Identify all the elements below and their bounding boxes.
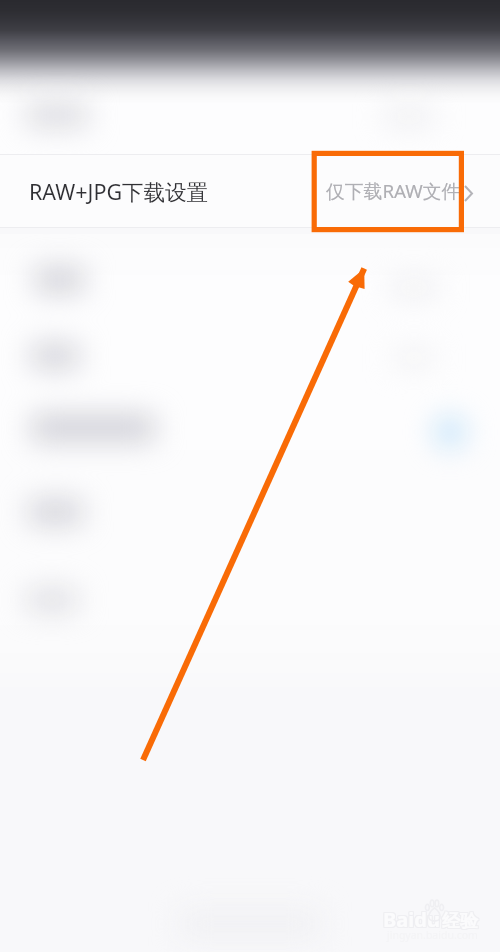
staticText: Baidu <box>383 906 440 933</box>
staticText: Baidu <box>382 906 439 933</box>
staticText: Baidu <box>383 905 440 932</box>
staticText: RAW+JPG下载设置 <box>29 177 209 206</box>
staticText: 经验 <box>442 911 478 934</box>
button[interactable]: 设置项 <box>0 258 500 330</box>
staticText: 经验 <box>441 909 477 932</box>
staticText: Baidu <box>384 907 441 934</box>
button[interactable]: 设置项 <box>0 488 500 562</box>
staticText: 经验 <box>443 909 479 932</box>
button[interactable]: 设置项 <box>0 576 500 650</box>
other: 展开 RAW+JPG 下载设置 <box>464 185 473 202</box>
staticText: 经验 <box>442 910 478 933</box>
button[interactable]: 设置项 <box>0 332 500 404</box>
staticText: 仅下载RAW文件 <box>326 178 461 204</box>
staticText: Baidu <box>383 907 440 934</box>
staticText: 经验 <box>443 911 479 934</box>
staticText: 经验 <box>442 909 478 932</box>
staticText: Baidu <box>384 905 441 932</box>
button[interactable]: 设置项 <box>0 404 500 482</box>
staticText: Baidu <box>382 907 439 934</box>
button[interactable]: RAW+JPG下载设置 <box>0 154 500 228</box>
staticText: Baidu <box>384 906 441 933</box>
staticText: 经验 <box>441 910 477 933</box>
staticText: 经验 <box>441 911 477 934</box>
staticText: Baidu <box>382 905 439 932</box>
button[interactable]: 设置项 <box>0 96 500 154</box>
staticText: 经验 <box>443 910 479 933</box>
